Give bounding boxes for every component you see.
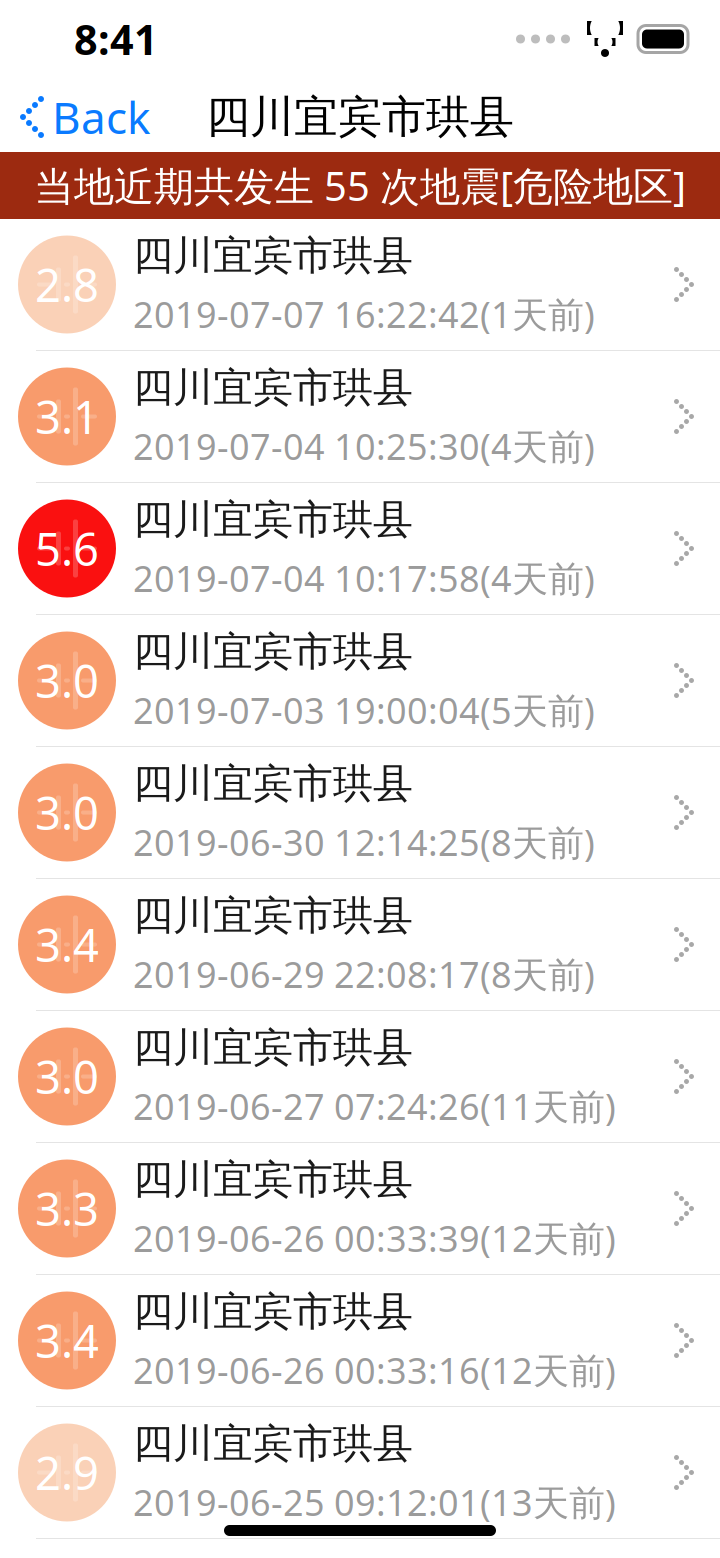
button[interactable]: 2.9	[0, 1407, 720, 1539]
staticText: 四川宜宾市珙县	[133, 891, 413, 940]
staticText: 3.0	[35, 1046, 99, 1107]
staticText: 当地近期共发生 55 次地震[危险地区]	[34, 159, 686, 212]
staticText: 2019-06-29 22:08:17(8天前)	[133, 950, 595, 998]
staticText: 2019-07-07 16:22:42(1天前)	[133, 290, 595, 338]
staticText: 四川宜宾市珙县	[133, 1023, 413, 1072]
staticText: 8:41	[74, 12, 158, 66]
button[interactable]: 3.0	[0, 1011, 720, 1143]
staticText: 3.0	[35, 650, 99, 711]
staticText: 2.9	[35, 1442, 99, 1503]
staticText: 5.6	[35, 518, 99, 579]
button[interactable]: 3.0	[0, 747, 720, 879]
button[interactable]: 3.4	[0, 1275, 720, 1407]
staticText: 四川宜宾市珙县	[133, 1419, 413, 1468]
button[interactable]: 3.4	[0, 879, 720, 1011]
staticText: Back	[52, 88, 150, 146]
staticText: 2019-06-30 12:14:25(8天前)	[133, 818, 595, 866]
staticText: 四川宜宾市珙县	[133, 1155, 413, 1204]
staticText: 四川宜宾市珙县	[133, 495, 413, 544]
staticText: 2.8	[35, 254, 99, 315]
button[interactable]: 3.3	[0, 1143, 720, 1275]
staticText: 3.3	[35, 1178, 99, 1239]
staticText: 2019-07-04 10:25:30(4天前)	[133, 422, 595, 470]
staticText: 四川宜宾市珙县	[133, 1287, 413, 1336]
staticText: 2019-06-26 00:33:39(12天前)	[133, 1214, 616, 1262]
staticText: 2019-06-27 07:24:26(11天前)	[133, 1082, 616, 1130]
button[interactable]: 2.8	[0, 219, 720, 351]
staticText: 四川宜宾市珙县	[206, 90, 514, 144]
button[interactable]: 3.0	[0, 615, 720, 747]
staticText: 2019-07-03 19:00:04(5天前)	[133, 686, 595, 734]
staticText: 2019-07-04 10:17:58(4天前)	[133, 554, 595, 602]
staticText: 四川宜宾市珙县	[133, 363, 413, 412]
staticText: 3.1	[35, 386, 99, 447]
staticText: 3.0	[35, 782, 99, 843]
button[interactable]: Back	[0, 76, 150, 158]
button[interactable]: 3.1	[0, 351, 720, 483]
staticText: 四川宜宾市珙县	[133, 231, 413, 280]
staticText: 3.4	[35, 914, 99, 975]
button[interactable]: 5.6	[0, 483, 720, 615]
staticText: 2019-06-26 00:33:16(12天前)	[133, 1346, 616, 1394]
staticText: 四川宜宾市珙县	[133, 627, 413, 676]
staticText: 四川宜宾市珙县	[133, 759, 413, 808]
staticText: 3.4	[35, 1310, 99, 1371]
staticText: 2019-06-25 09:12:01(13天前)	[133, 1478, 616, 1526]
